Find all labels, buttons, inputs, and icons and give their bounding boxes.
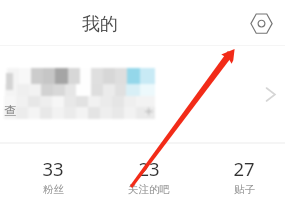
button[interactable]: 23 — [101, 156, 196, 206]
button[interactable]: More — [258, 78, 282, 102]
button[interactable]: 33 — [5, 156, 100, 206]
staticText: 查 — [4, 103, 16, 118]
staticText: 23 — [138, 156, 160, 181]
staticText: 33 — [42, 156, 64, 181]
staticText: 27 — [233, 156, 255, 181]
button[interactable]: Settings — [247, 9, 275, 37]
staticText: 关注的吧 — [128, 183, 170, 196]
staticText: 我的 — [82, 13, 118, 36]
staticText: 贴子 — [234, 183, 255, 196]
staticText: 粉丝 — [43, 183, 64, 196]
button[interactable]: 27 — [196, 156, 285, 206]
